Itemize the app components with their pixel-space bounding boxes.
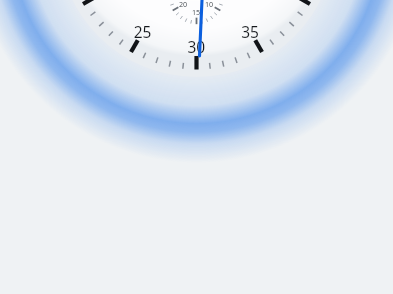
button[interactable]: Stopwatch dial (0, 0, 393, 294)
